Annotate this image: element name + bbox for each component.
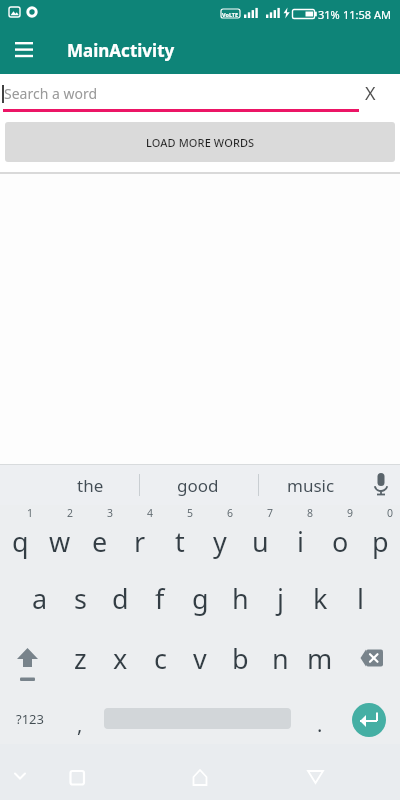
staticText: VoLTE (222, 11, 239, 18)
staticText: 11:58 AM (343, 7, 391, 20)
staticText: 6 (227, 506, 234, 520)
button[interactable]: j (260, 568, 300, 628)
button[interactable]: X (355, 80, 385, 106)
staticText: d (112, 580, 129, 617)
staticText: MainActivity (67, 39, 175, 62)
staticText: b (232, 640, 249, 677)
button[interactable] (186, 763, 214, 791)
staticText: 8 (307, 506, 314, 520)
button[interactable]: , (60, 693, 100, 755)
button[interactable]: ?123 (0, 690, 60, 747)
staticText: y (213, 523, 227, 560)
staticText: q (12, 523, 29, 560)
button[interactable]: c (140, 627, 180, 689)
button[interactable]: LOAD MORE WORDS (5, 122, 395, 162)
button[interactable] (0, 74, 400, 114)
button[interactable]: music (281, 467, 341, 503)
button[interactable]: w (40, 511, 80, 571)
staticText: l (357, 580, 364, 617)
button[interactable]: x (100, 627, 140, 689)
button[interactable] (368, 468, 396, 500)
staticText: Search a word (4, 84, 98, 102)
button[interactable]: m (300, 627, 340, 689)
staticText: 2 (67, 506, 74, 520)
button[interactable]: p (360, 511, 400, 571)
button[interactable]: d (100, 568, 140, 628)
staticText: u (252, 523, 269, 560)
staticText: w (49, 523, 71, 560)
button[interactable]: q (0, 511, 40, 571)
button[interactable]: r (120, 511, 160, 571)
staticText: j (277, 580, 284, 617)
staticText: x (113, 640, 128, 677)
button[interactable]: g (180, 568, 220, 628)
button[interactable]: u (240, 511, 280, 571)
button[interactable]: good (168, 467, 228, 503)
staticText: a (32, 580, 48, 617)
staticText: 4 (147, 506, 154, 520)
button[interactable]: f (140, 568, 180, 628)
staticText: h (232, 580, 249, 617)
staticText: 9 (347, 506, 354, 520)
staticText: c (154, 640, 167, 677)
staticText: t (175, 523, 185, 560)
staticText: k (313, 580, 328, 617)
button[interactable]: e (80, 511, 120, 571)
button[interactable]: v (180, 627, 220, 689)
staticText: f (155, 580, 165, 617)
staticText: 3 (107, 506, 114, 520)
staticText: n (272, 640, 289, 677)
button[interactable]: h (220, 568, 260, 628)
button[interactable]: i (280, 511, 320, 571)
button[interactable]: l (340, 568, 380, 628)
staticText: s (74, 580, 87, 617)
staticText: 5 (187, 506, 194, 520)
staticText: . (317, 711, 323, 738)
button[interactable]: the (60, 467, 120, 503)
staticText: 0 (387, 506, 394, 520)
staticText: music (287, 474, 335, 497)
staticText: p (372, 523, 389, 560)
button[interactable]: y (200, 511, 240, 571)
button[interactable] (301, 763, 329, 791)
staticText: good (177, 474, 219, 497)
staticText: 7 (267, 506, 274, 520)
button[interactable] (352, 703, 386, 737)
button[interactable]: k (300, 568, 340, 628)
staticText: e (92, 523, 108, 560)
button[interactable] (6, 763, 34, 791)
staticText: m (307, 640, 333, 677)
button[interactable]: t (160, 511, 200, 571)
button[interactable]: z (60, 627, 100, 689)
button[interactable]: s (60, 568, 100, 628)
staticText: 31% (318, 7, 340, 20)
button[interactable]: o (320, 511, 360, 571)
button[interactable] (63, 763, 91, 791)
staticText: X (365, 81, 376, 106)
staticText: the (77, 474, 104, 497)
staticText: r (134, 523, 146, 560)
staticText: v (193, 640, 207, 677)
button[interactable] (340, 625, 400, 687)
button[interactable] (0, 625, 60, 687)
staticText: g (192, 580, 209, 617)
staticText: i (297, 523, 304, 560)
staticText: LOAD MORE WORDS (146, 135, 255, 150)
staticText: 1 (27, 506, 34, 520)
staticText: o (332, 523, 349, 560)
staticText: ?123 (16, 710, 44, 728)
button[interactable] (8, 34, 40, 66)
staticText: z (74, 640, 87, 677)
button[interactable]: . (300, 693, 340, 755)
button[interactable]: b (220, 627, 260, 689)
button[interactable]: n (260, 627, 300, 689)
staticText: , (77, 711, 83, 738)
button[interactable]: a (20, 568, 60, 628)
